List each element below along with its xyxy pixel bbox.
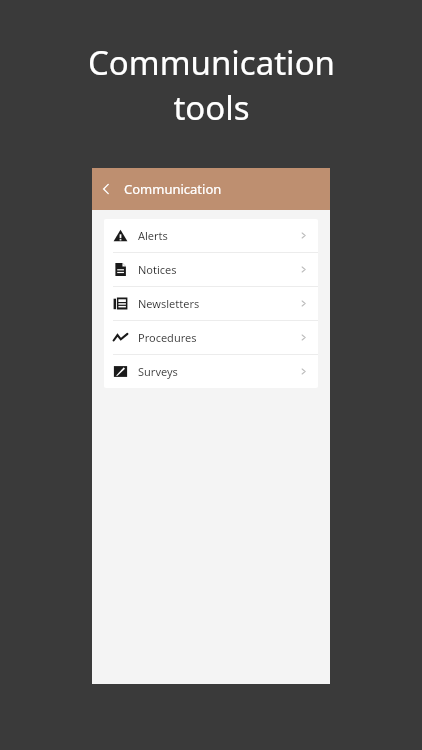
staticText: Procedures xyxy=(138,330,197,345)
button[interactable]: Alerts xyxy=(104,219,318,252)
staticText: Communication xyxy=(124,180,222,198)
button[interactable]: Procedures xyxy=(104,321,318,354)
button[interactable]: Notices xyxy=(104,253,318,286)
staticText: Alerts xyxy=(138,228,168,243)
staticText: Surveys xyxy=(138,364,178,379)
button[interactable]: Newsletters xyxy=(104,287,318,320)
button[interactable]: Surveys xyxy=(104,355,318,388)
staticText: Newsletters xyxy=(138,296,200,311)
button[interactable]: Back xyxy=(92,168,120,210)
staticText: tools xyxy=(173,85,250,130)
staticText: Notices xyxy=(138,262,177,277)
staticText: Communication xyxy=(88,40,335,85)
